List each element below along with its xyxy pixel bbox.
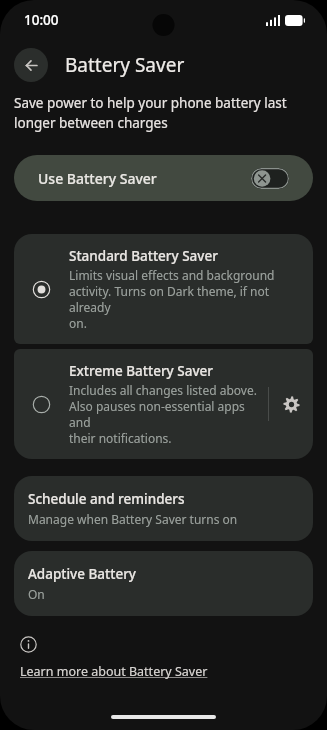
button[interactable]: Back bbox=[14, 48, 48, 82]
staticText: On bbox=[28, 586, 45, 602]
staticText: Extreme Battery Saver bbox=[69, 362, 213, 380]
staticText: Adaptive Battery bbox=[28, 565, 136, 583]
staticText: 10:00 bbox=[24, 11, 59, 29]
button[interactable]: Learn more about Battery Saver bbox=[20, 663, 208, 680]
button[interactable]: Adaptive Battery bbox=[14, 551, 313, 616]
staticText: Use Battery Saver bbox=[38, 169, 251, 188]
staticText: Standard Battery Saver bbox=[69, 247, 218, 265]
button[interactable]: Use Battery Saver bbox=[14, 155, 313, 201]
staticText: Battery Saver bbox=[65, 52, 185, 78]
staticText: Save power to help your phone battery la… bbox=[14, 94, 287, 132]
button[interactable]: Extreme Battery Saver bbox=[32, 362, 268, 446]
button[interactable]: Extreme Battery Saver settings bbox=[269, 382, 313, 426]
button[interactable]: Schedule and reminders bbox=[14, 476, 313, 541]
staticText: Limits visual effects and background act… bbox=[69, 267, 297, 331]
button[interactable]: Standard Battery Saver bbox=[14, 234, 313, 344]
staticText: Manage when Battery Saver turns on bbox=[28, 511, 238, 527]
staticText: Includes all changes listed above. Also … bbox=[69, 382, 268, 446]
staticText: Schedule and reminders bbox=[28, 490, 185, 508]
